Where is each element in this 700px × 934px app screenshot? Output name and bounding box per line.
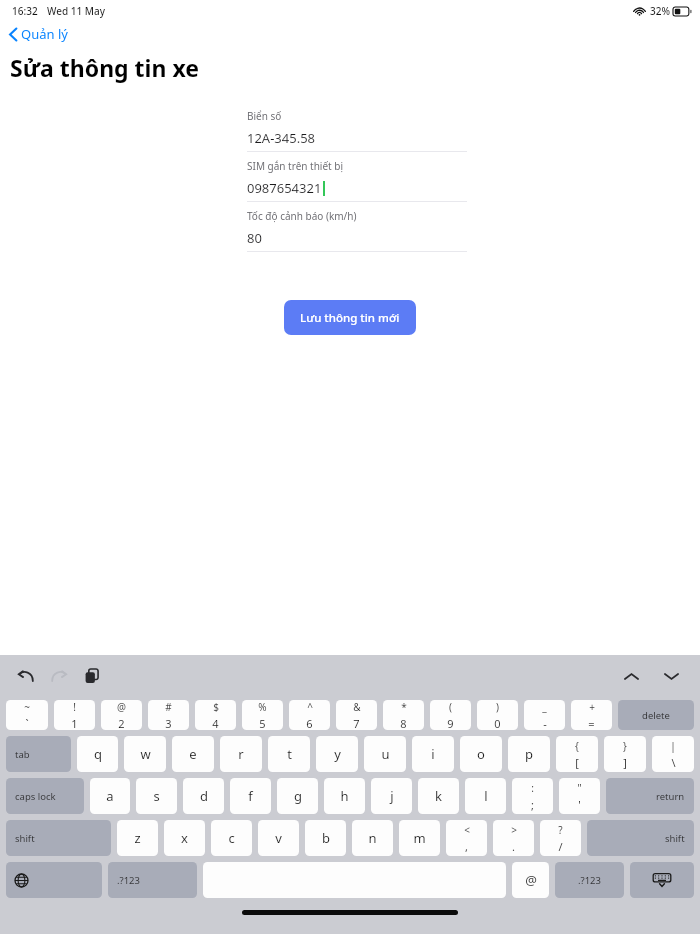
staticText: 16:32 (12, 4, 38, 18)
button[interactable]: Previous field (618, 663, 644, 689)
button[interactable]: y (316, 736, 358, 772)
button[interactable]: e (172, 736, 214, 772)
button[interactable]: return (606, 778, 694, 814)
staticText: return (656, 790, 685, 803)
button[interactable]: > (493, 820, 534, 856)
button[interactable]: Undo (13, 663, 39, 689)
staticText: * (401, 700, 407, 714)
button[interactable]: @ (101, 700, 142, 730)
staticText: ? (558, 823, 563, 837)
button[interactable]: o (460, 736, 502, 772)
button[interactable]: x (164, 820, 205, 856)
staticText: q (94, 745, 102, 763)
button[interactable]: u (364, 736, 406, 772)
button[interactable]: @ (512, 862, 549, 898)
staticText: ~ (24, 700, 30, 714)
button[interactable]: Change keyboard language (6, 862, 102, 898)
button[interactable]: i (412, 736, 454, 772)
button[interactable]: q (77, 736, 118, 772)
staticText: ) (496, 700, 499, 714)
button[interactable]: shift (587, 820, 694, 856)
staticText: l (484, 787, 488, 805)
staticText: p (525, 745, 533, 763)
button[interactable]: { (556, 736, 598, 772)
button[interactable]: j (371, 778, 412, 814)
button[interactable]: $ (195, 700, 236, 730)
button[interactable]: d (183, 778, 224, 814)
button[interactable]: s (136, 778, 177, 814)
staticText: 6 (306, 716, 313, 730)
staticText: n (368, 829, 377, 847)
staticText: Biển số (247, 109, 282, 123)
button[interactable]: SIM gắn trên thiết bị (219, 152, 481, 201)
staticText: j (390, 787, 394, 805)
button[interactable]: Paste (79, 663, 105, 689)
button[interactable]: & (336, 700, 377, 730)
button[interactable]: ! (54, 700, 95, 730)
button[interactable]: f (230, 778, 271, 814)
button[interactable]: Redo (46, 663, 72, 689)
button[interactable]: Hide keyboard (630, 862, 694, 898)
button[interactable]: ^ (289, 700, 330, 730)
button[interactable]: caps lock (6, 778, 84, 814)
button[interactable]: .?123 (555, 862, 624, 898)
button[interactable]: ~ (6, 700, 48, 730)
staticText: ^ (307, 700, 313, 714)
staticText: g (294, 787, 302, 805)
button[interactable]: : (512, 778, 553, 814)
staticText: 2 (118, 716, 125, 730)
button[interactable]: b (305, 820, 346, 856)
button[interactable]: _ (524, 700, 565, 730)
staticText: w (140, 745, 151, 763)
staticText: f (248, 787, 253, 805)
staticText: = (588, 716, 595, 730)
button[interactable]: + (571, 700, 612, 730)
button[interactable]: .?123 (108, 862, 197, 898)
button[interactable]: z (117, 820, 158, 856)
button[interactable]: n (352, 820, 393, 856)
staticText: Sửa thông tin xe (10, 52, 199, 83)
staticText: < (464, 823, 470, 837)
button[interactable]: < (446, 820, 487, 856)
button[interactable]: v (258, 820, 299, 856)
button[interactable]: g (277, 778, 318, 814)
button[interactable]: } (604, 736, 646, 772)
staticText: > (511, 823, 517, 837)
button[interactable]: l (465, 778, 506, 814)
button[interactable]: * (383, 700, 424, 730)
button[interactable]: % (242, 700, 283, 730)
button[interactable]: ( (430, 700, 471, 730)
staticText: + (589, 700, 595, 714)
staticText: shift (665, 832, 685, 845)
staticText: 7 (353, 716, 360, 730)
button[interactable]: p (508, 736, 550, 772)
staticText: v (275, 829, 282, 847)
button[interactable]: ) (477, 700, 518, 730)
button[interactable]: Biển số (219, 102, 481, 151)
button[interactable]: ? (540, 820, 581, 856)
button[interactable]: c (211, 820, 252, 856)
button[interactable]: delete (618, 700, 694, 730)
button[interactable]: r (220, 736, 262, 772)
button[interactable]: m (399, 820, 440, 856)
button[interactable]: # (148, 700, 189, 730)
staticText: u (381, 745, 390, 763)
button[interactable]: Next field (658, 663, 684, 689)
button[interactable]: w (124, 736, 166, 772)
staticText: Wed 11 May (47, 4, 105, 18)
staticText: 8 (400, 716, 407, 730)
button[interactable]: Lưu thông tin mới (284, 300, 416, 335)
button[interactable]: h (324, 778, 365, 814)
button[interactable]: Quản lý (7, 22, 70, 46)
button[interactable]: shift (6, 820, 111, 856)
button[interactable]: | (652, 736, 694, 772)
staticText: Tốc độ cảnh báo (km/h) (247, 209, 357, 223)
button[interactable]: a (90, 778, 130, 814)
staticText: @ (525, 871, 537, 889)
button[interactable]: k (418, 778, 459, 814)
button[interactable]: Tốc độ cảnh báo (km/h) (219, 202, 481, 251)
button[interactable]: t (268, 736, 310, 772)
button[interactable]: tab (6, 736, 71, 772)
button[interactable]: " (559, 778, 600, 814)
